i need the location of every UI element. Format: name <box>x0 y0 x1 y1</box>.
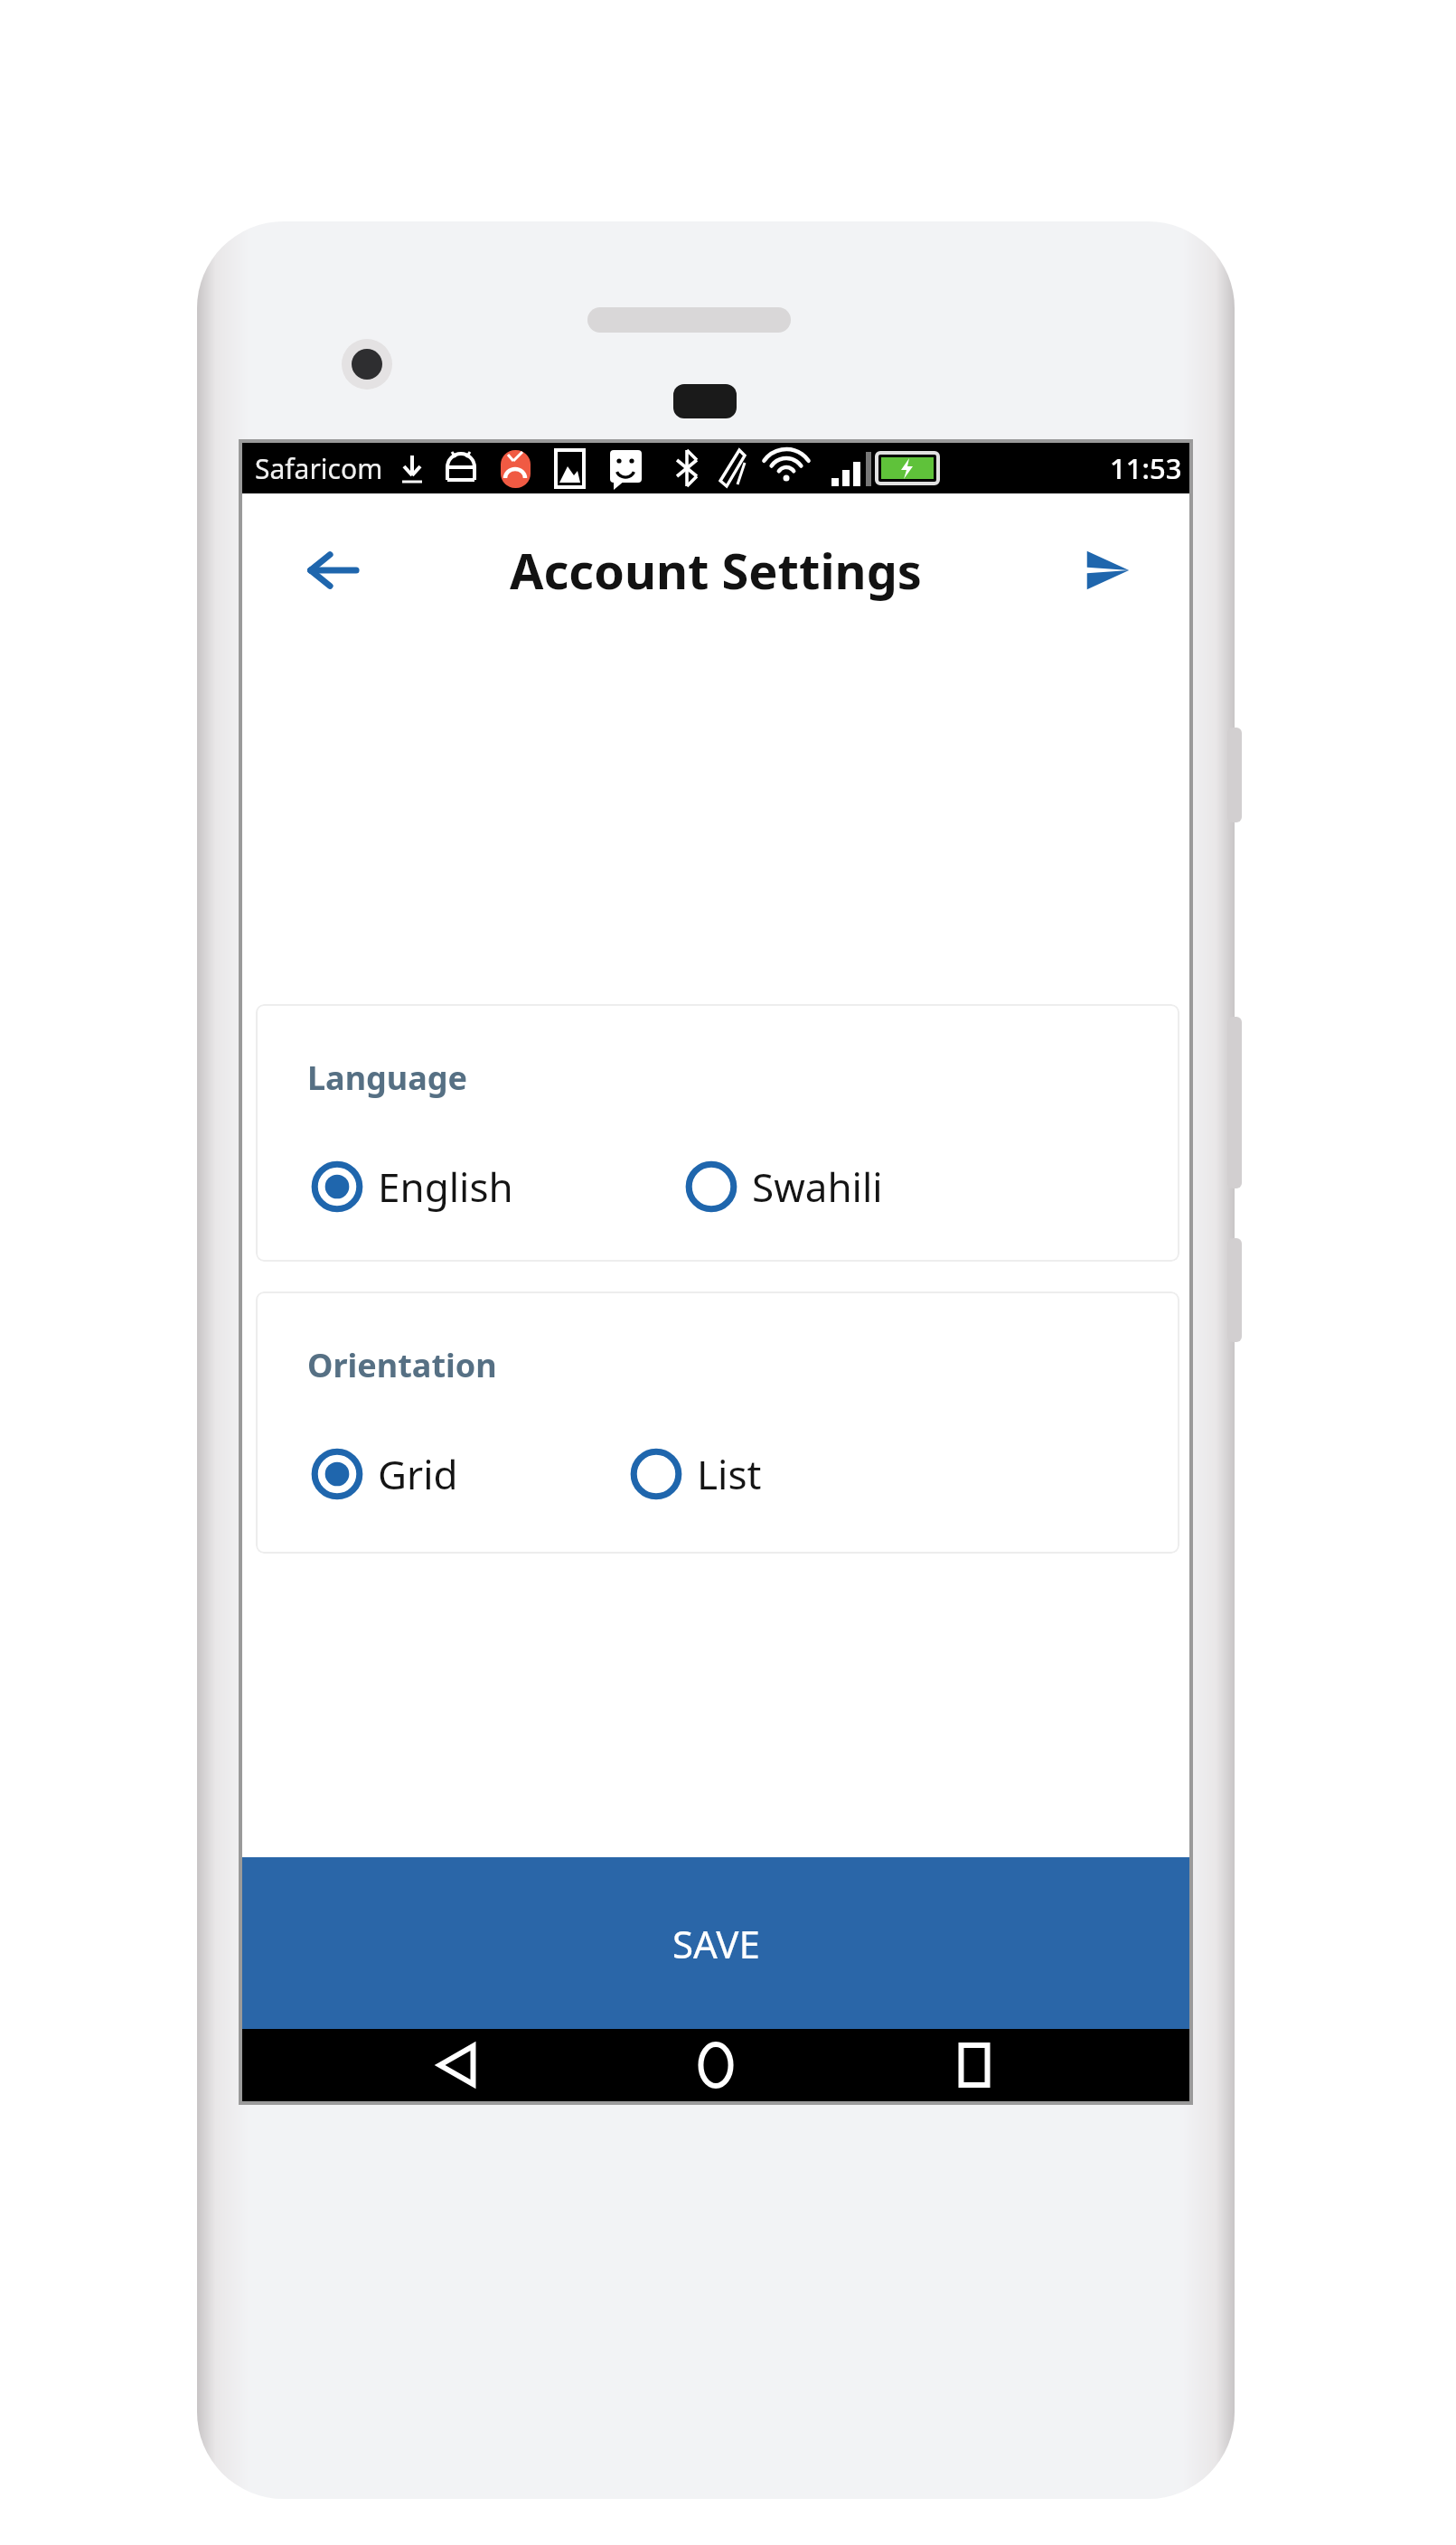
button[interactable]: SAVE <box>242 1857 1189 2029</box>
button[interactable]: List <box>625 1441 766 1507</box>
button[interactable]: Back <box>414 2029 501 2101</box>
staticText: English <box>378 1160 513 1214</box>
button[interactable]: Home <box>672 2029 759 2101</box>
staticText: Language <box>307 1056 468 1100</box>
staticText: Orientation <box>307 1343 497 1387</box>
staticText: 11:53 <box>1110 449 1182 487</box>
staticText: List <box>697 1447 762 1501</box>
staticText: Swahili <box>752 1160 883 1214</box>
button[interactable]: Back <box>295 532 371 608</box>
button[interactable]: Recents <box>931 2029 1018 2101</box>
staticText: SAVE <box>672 1918 760 1969</box>
button[interactable]: Grid <box>305 1441 462 1507</box>
button[interactable]: Send <box>1068 532 1144 608</box>
staticText: Safaricom <box>255 450 383 487</box>
staticText: Grid <box>378 1447 458 1501</box>
staticText: Account Settings <box>510 537 922 604</box>
button[interactable]: Swahili <box>680 1153 887 1220</box>
button[interactable]: English <box>305 1153 517 1220</box>
